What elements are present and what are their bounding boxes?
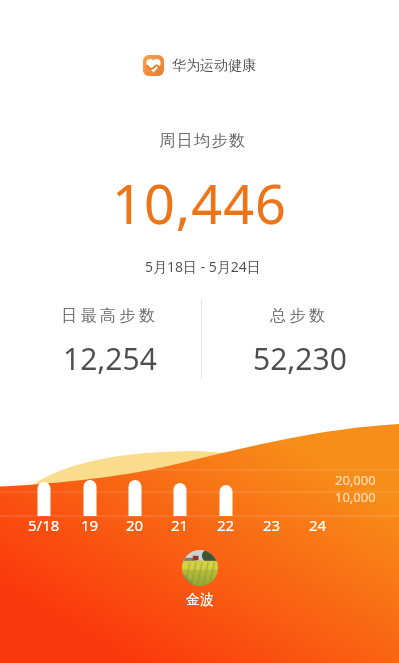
staticText: 52,230 [253, 338, 347, 379]
button[interactable]: 华为运动健康 [143, 55, 256, 76]
staticText: 24 [309, 515, 327, 535]
staticText: 20,000 [335, 471, 376, 489]
staticText: 20 [126, 515, 144, 535]
button[interactable]: 日最高步数 [10, 306, 209, 379]
staticText: 5月18日 - 5月24日 [145, 257, 261, 276]
staticText: 华为运动健康 [172, 57, 256, 75]
staticText: 总步数 [270, 306, 329, 326]
staticText: 12,254 [63, 338, 157, 379]
staticText: 23 [263, 515, 281, 535]
button[interactable]: 总步数 [201, 306, 398, 379]
staticText: 5/18 [28, 515, 60, 535]
staticText: 22 [217, 515, 235, 535]
staticText: 21 [171, 515, 189, 535]
staticText: 10,000 [335, 488, 376, 506]
staticText: 金波 [186, 591, 214, 609]
staticText: 日最高步数 [61, 306, 159, 326]
staticText: 10,446 [112, 166, 287, 240]
staticText: 19 [81, 515, 99, 535]
staticText: 周日均步数 [159, 131, 247, 151]
button[interactable] [182, 550, 218, 586]
